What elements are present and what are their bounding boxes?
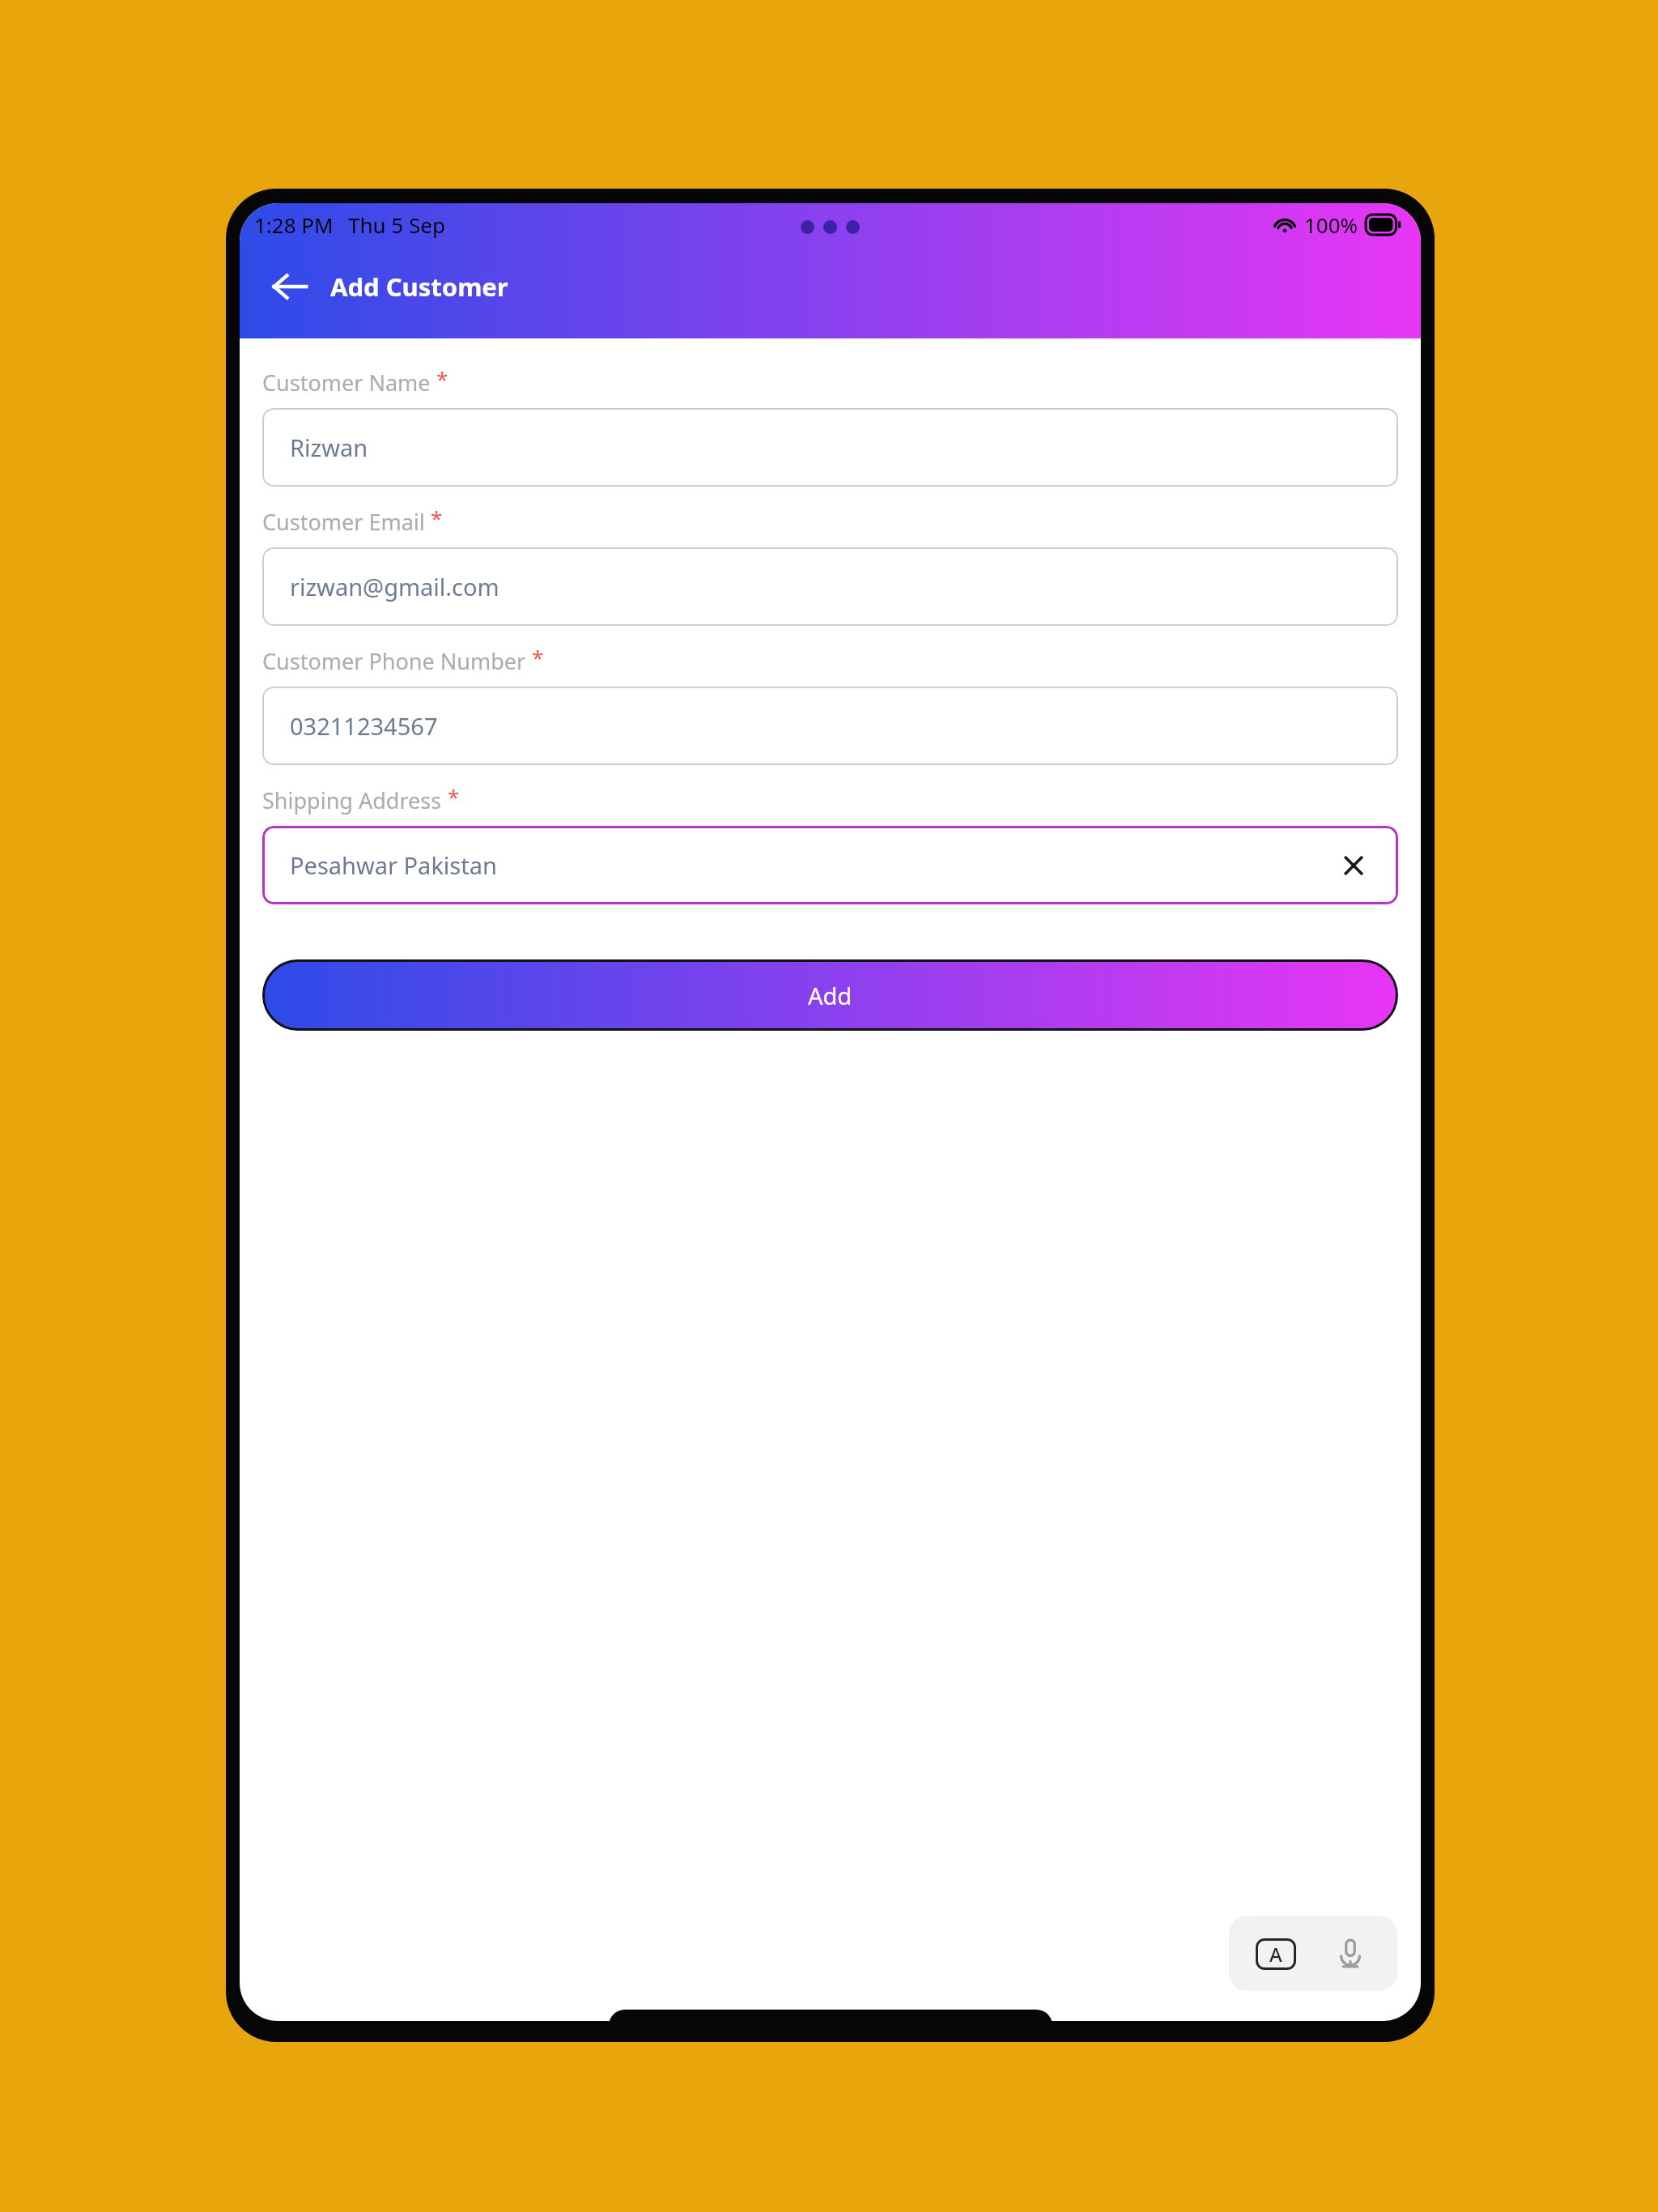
staticText: Customer Email [262, 507, 425, 537]
staticText: 1:28 PM [254, 211, 334, 239]
button[interactable]: 03211234567 [262, 687, 1398, 765]
button[interactable]: Back [259, 256, 321, 317]
button[interactable]: Add [262, 959, 1398, 1031]
button[interactable]: Keyboard [1249, 1927, 1303, 1980]
staticText: Pesahwar Pakistan [290, 849, 497, 881]
staticText: A [1269, 1941, 1282, 1967]
staticText: * [436, 364, 449, 393]
staticText: * [532, 643, 544, 671]
staticText: Add Customer [330, 270, 508, 304]
staticText: Thu 5 Sep [348, 211, 445, 239]
staticText: 03211234567 [290, 710, 438, 742]
staticText: rizwan@gmail.com [290, 571, 500, 602]
button[interactable]: Voice input [1324, 1927, 1377, 1980]
staticText: * [431, 504, 443, 532]
staticText: Add [808, 980, 852, 1011]
staticText: 100% [1304, 211, 1358, 239]
button[interactable]: Pesahwar Pakistan [262, 826, 1398, 904]
button[interactable]: Rizwan [262, 408, 1398, 487]
button[interactable]: Clear [1330, 842, 1377, 889]
button[interactable]: rizwan@gmail.com [262, 547, 1398, 626]
staticText: Shipping Address [262, 785, 442, 815]
staticText: Customer Phone Number [262, 646, 526, 676]
staticText: Customer Name [262, 368, 431, 398]
staticText: * [448, 782, 460, 810]
staticText: Rizwan [290, 432, 368, 463]
